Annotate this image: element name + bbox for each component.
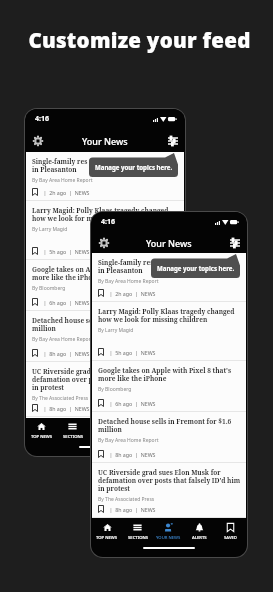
staticText: By Larry Magid [98,327,134,334]
staticText: | 5h ago | NEWS [38,248,90,255]
staticText: By The Associated Press [32,395,89,402]
staticText: By Bay Area Home Report [98,437,159,444]
staticText: SECTIONS [128,535,148,541]
staticText: YOUR NEWS [156,535,181,541]
staticText: By The Associated Press [98,496,155,503]
button[interactable]: Settings [29,132,46,149]
staticText: By Bloomberg [98,386,132,393]
staticText: | 6h ago | NEWS [38,299,90,306]
staticText: Single-family res in Pleasanton [98,258,154,275]
button[interactable]: TOP NEWS [26,422,57,440]
staticText: Single-family res in Pleasanton [32,157,88,174]
button[interactable]: Detached house sells in Fremont for $1.6… [26,311,184,362]
staticText: Your News [82,135,128,147]
staticText: Detached house sells in Fremont for $1.6… [98,417,232,434]
staticText: By Bay Area Home Report [32,336,93,343]
staticText: ALERTS [129,434,144,440]
staticText: TOP NEWS [96,535,118,541]
staticText: UC Riverside grad sues Elon Musk for def… [32,367,175,392]
staticText: 4:16 [35,114,49,124]
staticText: | 6h ago | NEWS [104,400,156,407]
button[interactable]: Manage your topics here. [151,254,241,278]
staticText: | 2h ago | NEWS [38,189,90,196]
button[interactable]: Manage your topics here. [89,153,179,177]
button[interactable]: ALERTS [120,422,152,440]
staticText: SAVED [224,535,237,541]
staticText: UC Riverside grad sues Elon Musk for def… [98,468,241,493]
staticText: YOUR NEWS [92,434,117,440]
staticText: | 5h ago | NEWS [104,349,156,356]
button[interactable]: SECTIONS [57,422,88,440]
button[interactable]: YOUR NEWS [153,523,184,541]
button[interactable]: ALERTS [184,523,215,541]
staticText: | 8h ago | NEWS [38,405,90,412]
staticText: Larry Magid: Polly Klaas tragedy changed… [32,206,169,223]
button[interactable]: TOP NEWS [92,523,122,541]
button[interactable]: Detached house sells in Fremont for $1.6… [92,412,246,463]
staticText: By Larry Magid [32,226,68,233]
staticText: Google takes on Apple with Pixel 8 that'… [32,265,166,282]
button[interactable]: Single-family res in Pleasanton [92,253,246,302]
staticText: TOP NEWS [31,434,53,440]
button[interactable]: SAVED [215,523,246,541]
staticText: Manage your topics here. [95,163,173,171]
button[interactable]: Single-family res in Pleasanton [26,152,184,201]
staticText: By Bay Area Home Report [98,278,159,285]
staticText: Customize your feed [6,26,273,54]
button[interactable]: UC Riverside grad sues Elon Musk for def… [92,463,246,518]
button[interactable]: Google takes on Apple with Pixel 8 that'… [92,361,246,412]
staticText: Your News [146,237,192,249]
button[interactable]: SECTIONS [122,523,153,541]
staticText: Manage your topics here. [157,264,235,272]
staticText: 4:16 [101,217,115,227]
staticText: Detached house sells in Fremont for $1.6… [32,316,166,333]
staticText: | 2h ago | NEWS [104,290,156,297]
button[interactable]: SAVED [152,422,184,440]
staticText: | 8h ago | NEWS [104,451,156,458]
staticText: By Bay Area Home Report [32,177,93,184]
button[interactable]: Larry Magid: Polly Klaas tragedy changed… [26,201,184,260]
staticText: | 8h ago | NEWS [38,350,90,357]
staticText: | 8h ago | NEWS [104,506,156,513]
button[interactable]: Settings [95,234,112,251]
button[interactable]: UC Riverside grad sues Elon Musk for def… [26,362,184,417]
staticText: Larry Magid: Polly Klaas tragedy changed… [98,307,235,324]
button[interactable]: Larry Magid: Polly Klaas tragedy changed… [92,302,246,361]
button[interactable]: Google takes on Apple with Pixel 8 that'… [26,260,184,311]
staticText: SECTIONS [63,434,83,440]
staticText: By Bloomberg [32,285,66,292]
button[interactable]: Tune topics [226,234,243,251]
button[interactable]: Tune topics [164,132,181,149]
button[interactable]: YOUR NEWS [88,422,120,440]
staticText: ALERTS [192,535,207,541]
staticText: Google takes on Apple with Pixel 8 that'… [98,366,232,383]
